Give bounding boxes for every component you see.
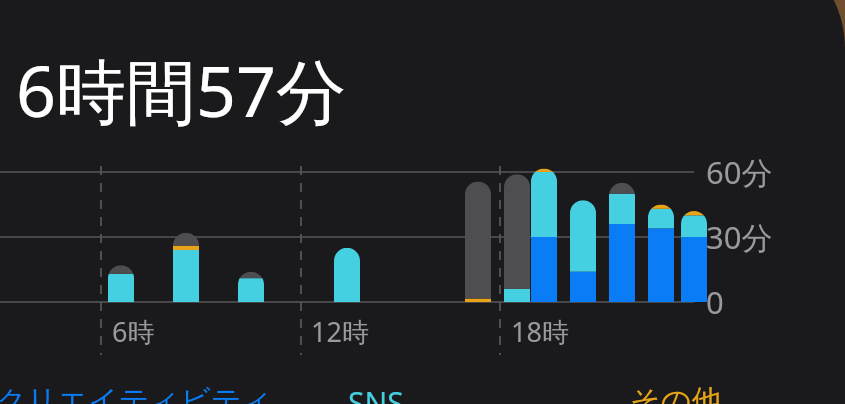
button[interactable]: スクリーンタイム 6時間57分 グラフ: [0, 0, 845, 404]
